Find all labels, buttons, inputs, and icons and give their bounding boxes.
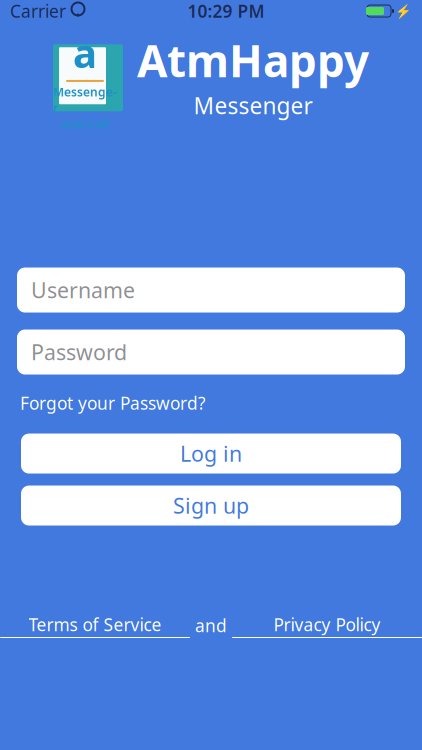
button[interactable]: Log in	[21, 433, 401, 473]
staticText: Messenger	[53, 84, 117, 116]
staticText: Terms of Service	[28, 613, 161, 636]
staticText: Sign up	[173, 491, 249, 520]
button[interactable]: Privacy Policy	[232, 613, 422, 638]
staticText: Log in	[180, 439, 242, 468]
staticText: Password	[31, 338, 127, 366]
staticText: Username	[31, 276, 135, 304]
staticText: Forgot your Password?	[20, 391, 206, 414]
staticText: Messenger	[193, 90, 312, 120]
button[interactable]: Sign up	[21, 485, 401, 525]
staticText: AtmHappy	[137, 31, 369, 89]
staticText: Privacy Policy	[273, 613, 380, 636]
button[interactable]: Forgot your Password?	[20, 386, 206, 419]
staticText: Carrier	[10, 0, 66, 22]
staticText: and Call	[61, 116, 108, 132]
staticText: and	[190, 614, 232, 637]
staticText: 10:29 PM	[187, 0, 264, 22]
staticText: a	[73, 26, 97, 79]
staticText: ⚡	[395, 3, 412, 19]
button[interactable]: Terms of Service	[0, 613, 190, 638]
